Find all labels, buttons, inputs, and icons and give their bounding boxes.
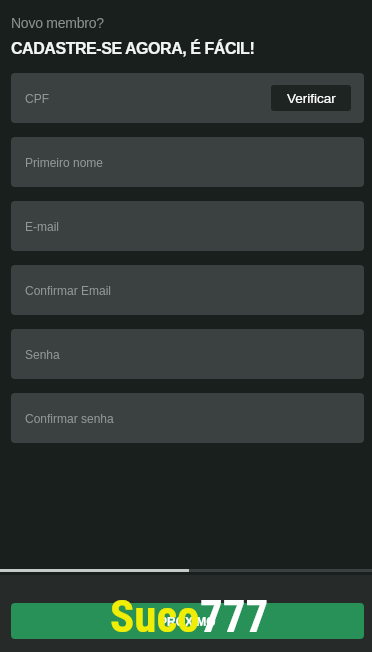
button[interactable]: E-mail <box>11 201 364 251</box>
button[interactable]: Senha <box>11 329 364 379</box>
staticText: Senha <box>25 348 60 361</box>
staticText: Confirmar senha <box>25 412 114 425</box>
staticText: E-mail <box>25 220 60 233</box>
button[interactable]: Verificar <box>271 85 351 111</box>
button[interactable]: CPF <box>11 73 364 123</box>
button[interactable]: Confirmar senha <box>11 393 364 443</box>
staticText: CADASTRE-SE AGORA, É FÁCIL! <box>11 40 255 58</box>
staticText: Confirmar Email <box>25 284 112 297</box>
button[interactable]: Confirmar Email <box>11 265 364 315</box>
staticText: Suco <box>110 590 200 643</box>
button[interactable]: Primeiro nome <box>11 137 364 187</box>
staticText: CPF <box>25 92 49 105</box>
staticText: 777 <box>200 590 269 643</box>
staticText: PRÓXIMO <box>159 615 216 628</box>
staticText: Novo membro? <box>11 15 104 31</box>
staticText: Verificar <box>287 91 336 106</box>
button[interactable]: PRÓXIMO <box>11 603 364 639</box>
staticText: Primeiro nome <box>25 156 104 169</box>
